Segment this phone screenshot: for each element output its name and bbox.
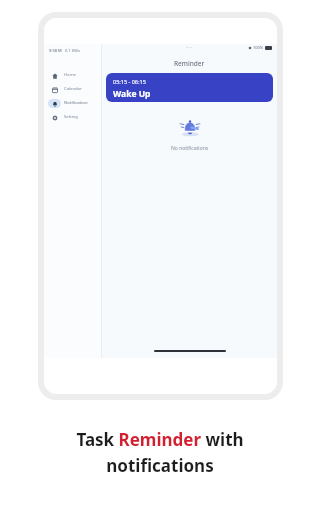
staticText: 05:15 - 06:15: [113, 78, 146, 85]
button[interactable]: Notification: [44, 96, 101, 110]
button[interactable]: Setting: [44, 110, 101, 124]
staticText: Calendar: [64, 86, 82, 92]
staticText: Wake Up: [113, 88, 151, 100]
staticText: No notifications: [171, 145, 209, 152]
other: Notification: [52, 101, 58, 107]
staticText: 9:58 M: [49, 48, 62, 53]
button[interactable]: Home: [44, 68, 101, 82]
staticText: Home: [64, 72, 76, 78]
staticText: Setting: [64, 114, 78, 120]
staticText: 0.1 KB/s: [65, 48, 81, 53]
button[interactable]: Calendar: [44, 82, 101, 96]
staticText: • • •: [186, 45, 193, 50]
staticText: Task Reminder with: [76, 428, 244, 451]
staticText: notifications: [106, 454, 214, 477]
staticText: Notification: [64, 100, 88, 106]
staticText: Reminder: [174, 59, 205, 68]
button[interactable]: 05:15 - 06:15: [106, 73, 273, 102]
staticText: 100%: [253, 45, 264, 50]
